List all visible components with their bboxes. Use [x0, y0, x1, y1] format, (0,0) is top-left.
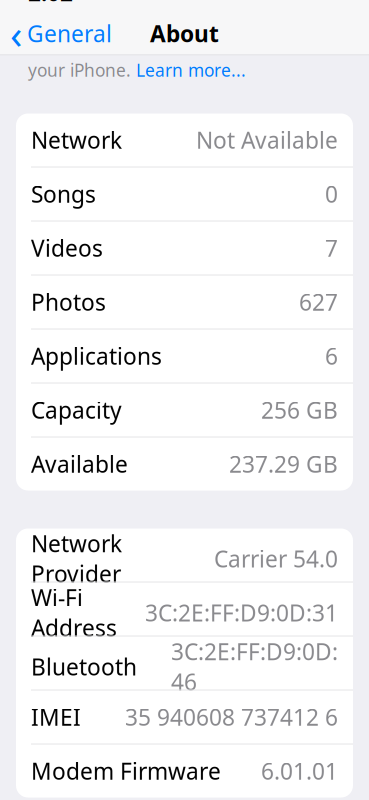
staticText: 3C:2E:FF:D9:0D:46 — [171, 636, 338, 697]
button[interactable]: IMEI — [16, 690, 353, 743]
staticText: Modem Firmware — [31, 756, 221, 786]
staticText: General — [27, 18, 112, 48]
staticText: 237.29 GB — [229, 449, 338, 479]
button[interactable]: Applications — [16, 329, 353, 382]
staticText: Learn more... — [136, 58, 246, 81]
staticText: Carrier 54.0 — [214, 544, 338, 574]
staticText: 6.01.01 — [261, 756, 338, 786]
button[interactable]: Capacity — [16, 383, 353, 436]
staticText: Songs — [31, 179, 96, 209]
staticText: 7 — [325, 233, 338, 263]
staticText: 0 — [325, 179, 338, 209]
staticText: Wi-Fi Address — [31, 582, 117, 643]
staticText: Videos — [31, 233, 103, 263]
button[interactable]: Learn more... — [136, 58, 246, 81]
staticText: 256 GB — [261, 395, 338, 425]
staticText: Not Available — [196, 125, 338, 155]
button[interactable]: Network Provider — [16, 528, 353, 581]
staticText: Applications — [31, 341, 162, 371]
button[interactable]: Wi-Fi Address — [16, 582, 353, 635]
staticText: Capacity — [31, 395, 122, 425]
button[interactable]: Photos — [16, 275, 353, 328]
staticText: Bluetooth — [31, 652, 137, 682]
button[interactable]: Modem Firmware — [16, 744, 353, 797]
staticText: 2:02 — [28, 0, 73, 7]
button[interactable]: Songs — [16, 167, 353, 220]
staticText: ‹ — [10, 7, 22, 60]
staticText: 35 940608 737412 6 — [125, 702, 338, 732]
staticText: Network Provider — [31, 528, 122, 589]
button[interactable]: ‹ — [0, 12, 122, 54]
staticText: 6 — [325, 341, 338, 371]
staticText: Available — [31, 449, 128, 479]
staticText: Photos — [31, 287, 106, 317]
button[interactable]: Network — [16, 113, 353, 166]
staticText: 3C:2E:FF:D9:0D:31 — [145, 598, 338, 628]
staticText: your iPhone. — [28, 58, 136, 81]
button[interactable]: Available — [16, 437, 353, 490]
staticText: Network — [31, 125, 122, 155]
staticText: 627 — [299, 287, 338, 317]
button[interactable]: Videos — [16, 221, 353, 274]
staticText: IMEI — [31, 702, 81, 732]
staticText: About — [150, 18, 219, 48]
button[interactable]: Bluetooth — [16, 636, 353, 689]
